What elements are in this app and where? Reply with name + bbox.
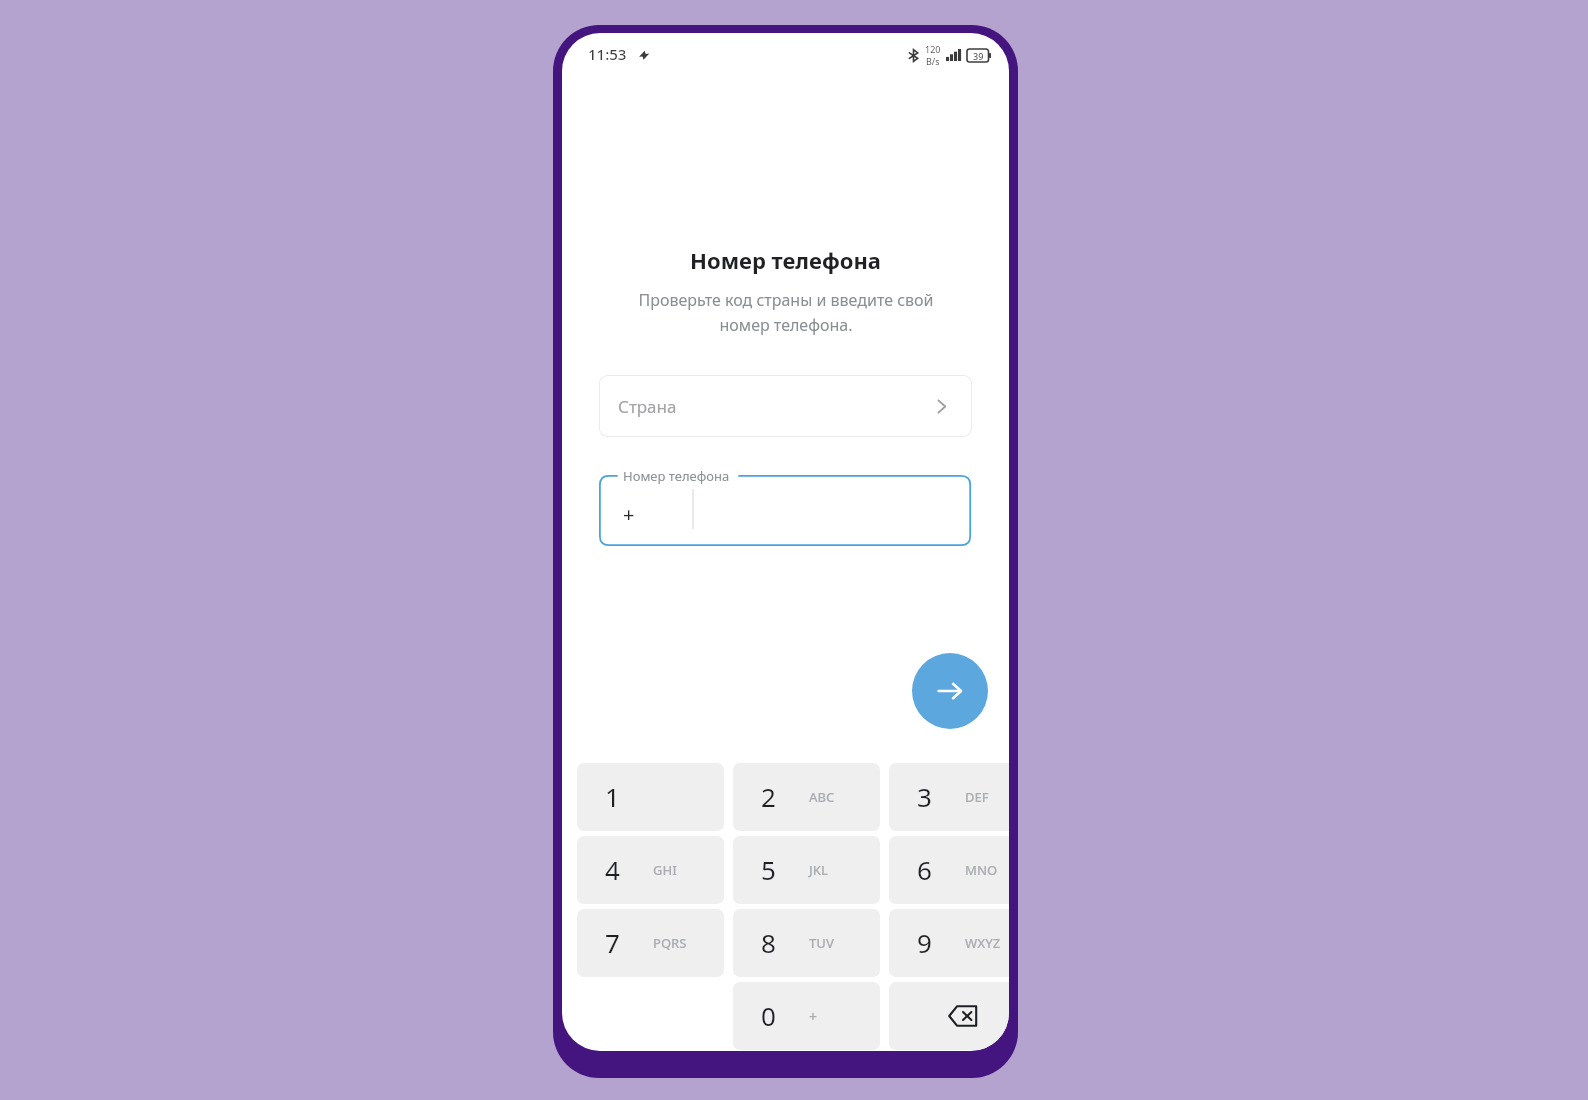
staticText: 1 (605, 779, 620, 814)
staticText: 6 (917, 852, 932, 887)
staticText: 120 (925, 43, 941, 55)
staticText: 5 (761, 852, 776, 887)
staticText: 9 (917, 925, 932, 960)
button[interactable]: 9 (889, 909, 1009, 977)
staticText: 11:53 (588, 44, 627, 64)
button[interactable]: 5 (733, 836, 880, 904)
staticText: Номер телефона (623, 467, 730, 485)
button[interactable]: Страна (599, 375, 972, 437)
staticText: DEF (965, 788, 989, 806)
button[interactable]: Далее (912, 653, 988, 729)
staticText: 7 (605, 925, 620, 960)
staticText: PQRS (653, 934, 687, 952)
staticText: MNO (965, 861, 998, 879)
staticText: 3 (917, 779, 932, 814)
button[interactable]: 0 (733, 982, 880, 1050)
staticText: WXYZ (965, 934, 1001, 952)
staticText: Номер телефона (690, 245, 881, 275)
staticText: 39 (973, 50, 984, 62)
button[interactable]: 7 (577, 909, 724, 977)
staticText: GHI (653, 861, 677, 879)
staticText: ABC (809, 788, 835, 806)
staticText: B/s (926, 55, 940, 67)
staticText: Страна (618, 395, 677, 418)
staticText: + (623, 501, 635, 528)
staticText: JKL (809, 861, 828, 879)
button[interactable]: 4 (577, 836, 724, 904)
button[interactable]: Номер телефона (599, 475, 972, 547)
staticText: 8 (761, 925, 776, 960)
staticText: 2 (761, 779, 776, 814)
staticText: 4 (605, 852, 620, 887)
button[interactable]: Удалить (889, 982, 1009, 1050)
button[interactable]: 1 (577, 763, 724, 831)
button[interactable]: 2 (733, 763, 880, 831)
staticText: 0 (761, 998, 776, 1033)
button[interactable]: 6 (889, 836, 1009, 904)
staticText: Проверьте код страны и введите свой номе… (638, 289, 934, 335)
button[interactable]: 3 (889, 763, 1009, 831)
staticText: TUV (809, 934, 834, 952)
button[interactable]: 8 (733, 909, 880, 977)
staticText: + (809, 1007, 818, 1026)
